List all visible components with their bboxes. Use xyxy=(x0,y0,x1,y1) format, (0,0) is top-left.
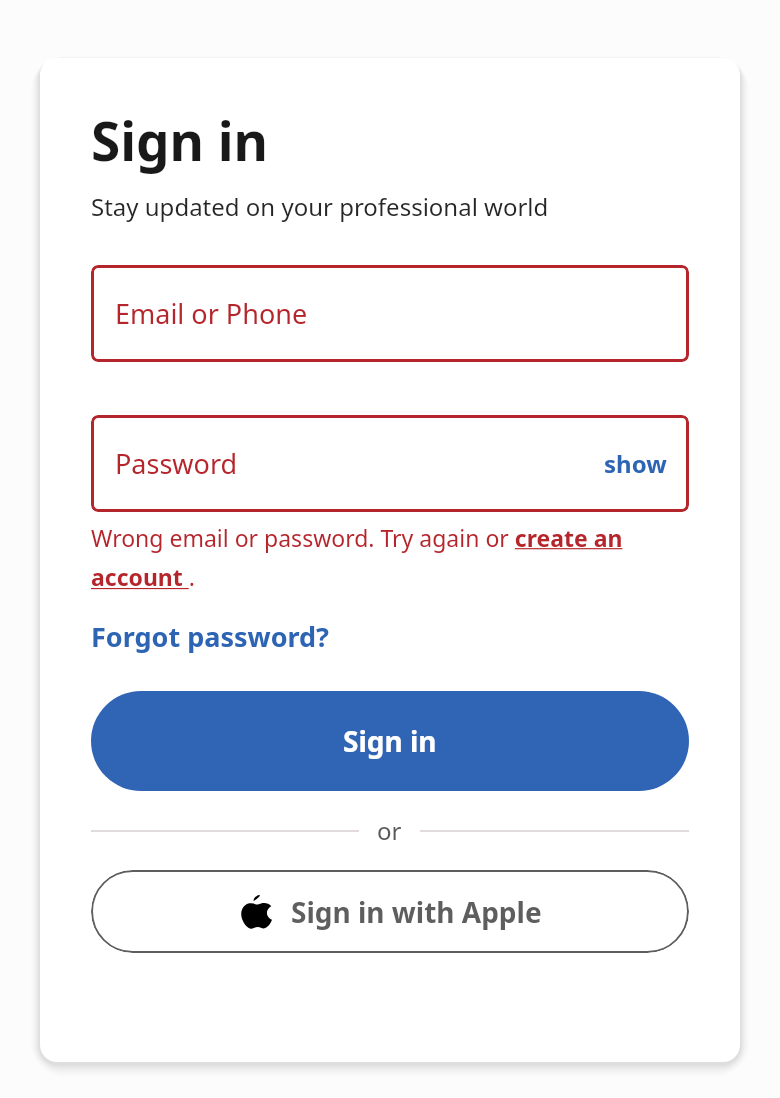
button[interactable]: Sign in xyxy=(91,691,689,791)
staticText: Sign in with Apple xyxy=(291,893,542,931)
staticText: Stay updated on your professional world xyxy=(91,190,549,223)
staticText: show xyxy=(604,447,667,480)
staticText: Sign in xyxy=(343,722,437,760)
other: Apple logo xyxy=(239,895,273,929)
button[interactable]: Apple logo xyxy=(91,870,689,953)
staticText: Password xyxy=(115,445,238,482)
button[interactable]: show xyxy=(604,447,667,480)
staticText: or xyxy=(377,814,402,847)
button[interactable]: Wrong email or password. Try again or cr… xyxy=(91,522,689,593)
staticText: Email or Phone xyxy=(115,295,308,332)
button[interactable]: Email or Phone xyxy=(91,265,689,362)
button[interactable]: Forgot password? xyxy=(91,618,329,655)
button[interactable]: Password xyxy=(91,415,689,512)
staticText: Wrong email or password. Try again or cr… xyxy=(91,522,689,593)
staticText: Forgot password? xyxy=(91,618,329,655)
staticText: Sign in xyxy=(91,104,269,176)
